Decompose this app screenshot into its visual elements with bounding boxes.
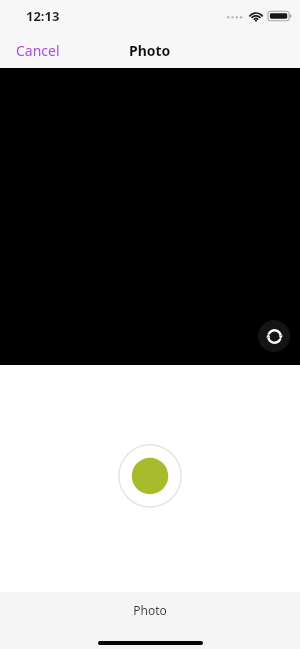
button[interactable]: Switch camera — [258, 320, 290, 352]
staticText: Photo — [133, 602, 167, 618]
button[interactable]: Photo — [0, 592, 300, 628]
staticText: Photo — [129, 41, 171, 60]
staticText: Cancel — [16, 41, 60, 60]
button[interactable]: Take photo — [118, 444, 182, 508]
staticText: 12:13 — [26, 7, 60, 25]
button[interactable]: Cancel — [0, 35, 76, 66]
